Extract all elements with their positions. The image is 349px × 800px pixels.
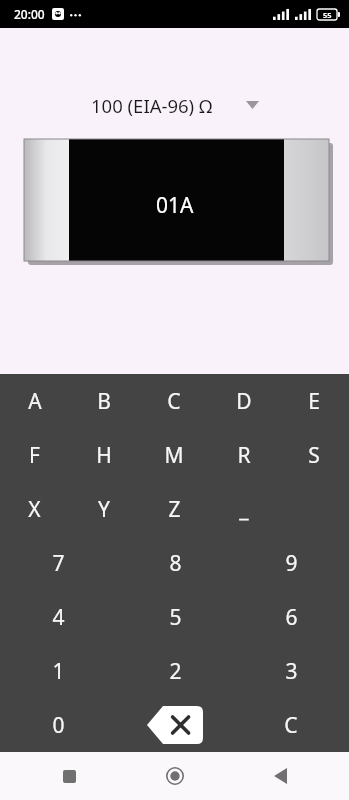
staticText: 0 bbox=[52, 711, 65, 740]
button[interactable]: 5 bbox=[117, 590, 233, 644]
staticText: Z bbox=[168, 495, 181, 524]
staticText: D bbox=[236, 387, 252, 416]
button[interactable]: 1 bbox=[0, 644, 117, 698]
staticText: 9 bbox=[285, 549, 298, 578]
staticText: 01A bbox=[156, 191, 194, 220]
button[interactable]: Recents bbox=[48, 755, 90, 797]
button[interactable]: 4 bbox=[0, 590, 117, 644]
staticText: 6 bbox=[285, 603, 298, 632]
button[interactable]: 7 bbox=[0, 536, 117, 590]
button[interactable]: C bbox=[233, 698, 349, 752]
button[interactable]: 2 bbox=[117, 644, 233, 698]
staticText: 2 bbox=[169, 657, 182, 686]
staticText: C bbox=[284, 711, 298, 740]
button[interactable]: F bbox=[0, 428, 69, 482]
staticText: 8 bbox=[169, 549, 182, 578]
button[interactable]: Back bbox=[259, 755, 301, 797]
button[interactable]: 100 (EIA-96) Ω bbox=[0, 90, 349, 120]
staticText: 1 bbox=[52, 657, 65, 686]
button[interactable]: 6 bbox=[233, 590, 349, 644]
staticText: _ bbox=[239, 495, 249, 524]
staticText: M bbox=[164, 441, 184, 470]
staticText: 7 bbox=[52, 549, 65, 578]
staticText: X bbox=[28, 495, 41, 524]
staticText: R bbox=[237, 441, 251, 470]
staticText: C bbox=[167, 387, 181, 416]
button[interactable]: 3 bbox=[233, 644, 349, 698]
button[interactable]: 8 bbox=[117, 536, 233, 590]
button[interactable]: Backspace bbox=[117, 698, 233, 752]
staticText: 3 bbox=[285, 657, 298, 686]
staticText: 55 bbox=[323, 10, 332, 20]
staticText: S bbox=[308, 441, 320, 470]
button[interactable]: R bbox=[209, 428, 279, 482]
button[interactable]: 9 bbox=[233, 536, 349, 590]
staticText: B bbox=[97, 387, 111, 416]
button[interactable]: 0 bbox=[0, 698, 117, 752]
staticText: F bbox=[29, 441, 40, 470]
staticText: 5 bbox=[169, 603, 182, 632]
staticText: Y bbox=[98, 495, 110, 524]
button[interactable]: D bbox=[209, 374, 279, 428]
button[interactable]: C bbox=[139, 374, 209, 428]
button[interactable]: _ bbox=[209, 482, 279, 536]
button[interactable]: X bbox=[0, 482, 69, 536]
button[interactable]: Y bbox=[69, 482, 139, 536]
button[interactable]: M bbox=[139, 428, 209, 482]
button[interactable]: Home bbox=[154, 755, 196, 797]
button[interactable]: E bbox=[279, 374, 349, 428]
staticText: 20:00 bbox=[14, 6, 45, 22]
staticText: A bbox=[28, 387, 42, 416]
staticText: H bbox=[96, 441, 112, 470]
button[interactable]: Z bbox=[139, 482, 209, 536]
button[interactable]: S bbox=[279, 428, 349, 482]
button[interactable]: A bbox=[0, 374, 69, 428]
staticText: 100 (EIA-96) Ω bbox=[91, 93, 213, 118]
button[interactable]: H bbox=[69, 428, 139, 482]
staticText: E bbox=[308, 387, 320, 416]
button[interactable]: B bbox=[69, 374, 139, 428]
staticText: 4 bbox=[52, 603, 65, 632]
